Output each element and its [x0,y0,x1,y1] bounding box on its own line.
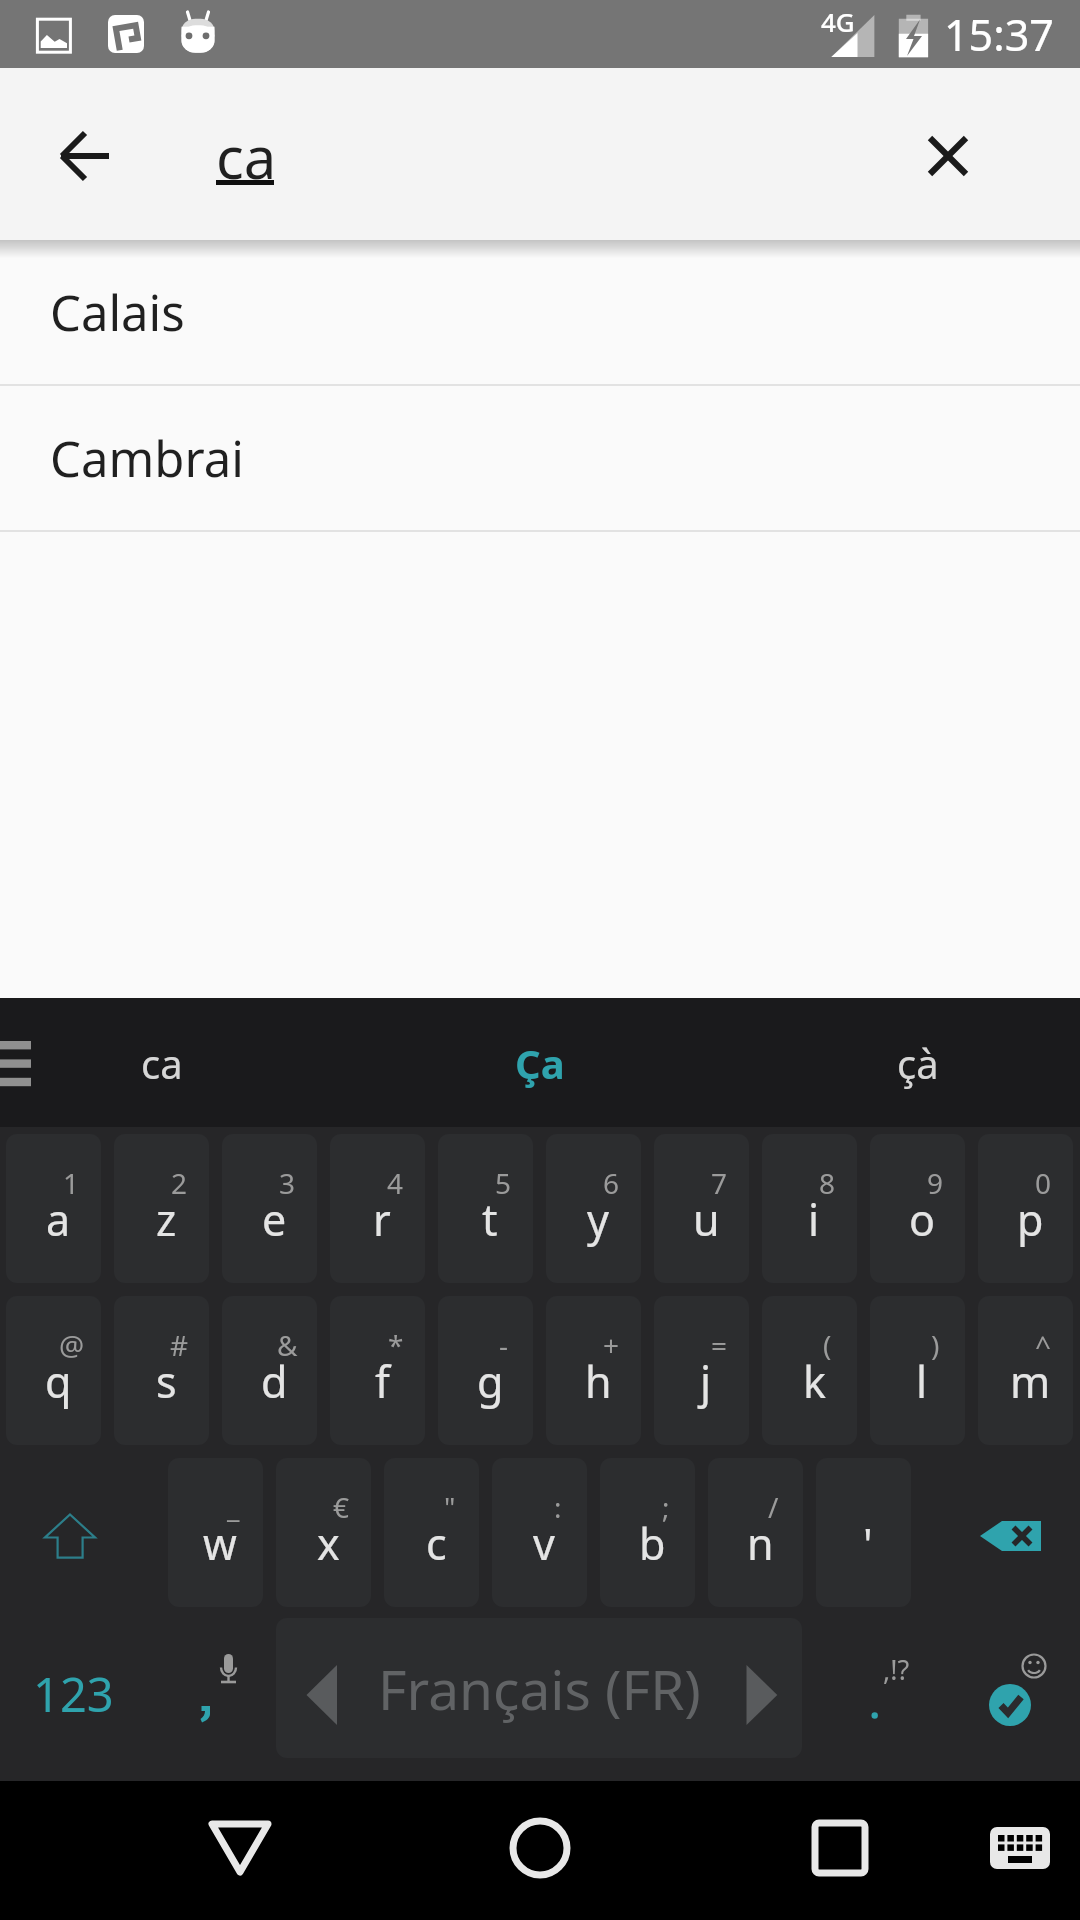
button[interactable]: Hide keyboard [180,1781,300,1920]
staticText: i [808,1190,820,1249]
button[interactable]: 4 [330,1134,425,1283]
staticText: ,!? [883,1651,910,1688]
staticText: r [373,1190,391,1249]
staticText: u [693,1190,720,1249]
button[interactable]: _ [168,1458,263,1607]
staticText: 9 [927,1164,944,1202]
button[interactable]: 123 [0,1614,160,1762]
button[interactable]: 7 [654,1134,749,1283]
staticText: € [333,1488,350,1526]
staticText: Cambrai [50,425,244,492]
staticText: h [585,1352,612,1411]
staticText: 4G [821,4,855,39]
staticText: f [375,1352,390,1411]
button[interactable]: ,!? [802,1614,920,1762]
staticText: 0 [1035,1164,1052,1202]
staticText: ( [823,1326,832,1364]
staticText: t [482,1190,498,1249]
staticText: ) [931,1326,940,1364]
staticText: k [803,1352,826,1411]
staticText: 15:37 [944,5,1054,64]
button[interactable]: 5 [438,1134,533,1283]
staticText: ; [662,1488,670,1526]
staticText: 8 [819,1164,836,1202]
staticText: " [444,1488,456,1526]
staticText: _ [227,1488,240,1526]
button[interactable]: Enter [920,1614,1080,1762]
button[interactable]: @ [6,1296,101,1445]
staticText: 7 [711,1164,728,1202]
staticText: w [203,1514,237,1573]
staticText: y [587,1190,609,1249]
button[interactable]: 1 [6,1134,101,1283]
button[interactable]: Ça [430,998,650,1127]
button[interactable]: Recent apps [780,1781,900,1920]
button[interactable]: Français (FR) [276,1618,802,1758]
button[interactable]: + [546,1296,641,1445]
staticText: ' [863,1514,873,1573]
staticText: z [156,1190,177,1249]
staticText: 123 [33,1662,114,1726]
button[interactable]: Backspace [918,1458,1080,1607]
button[interactable]: " [384,1458,479,1607]
staticText: n [747,1514,774,1573]
button[interactable]: ( [762,1296,857,1445]
button[interactable]: : [492,1458,587,1607]
staticText: a [46,1190,71,1249]
button[interactable]: * [330,1296,425,1445]
button[interactable]: Cambrai [0,386,1080,532]
staticText: b [639,1514,666,1573]
staticText: + [603,1326,620,1364]
button[interactable]: ca [52,998,272,1127]
button[interactable]: ) [870,1296,965,1445]
button[interactable]: 0 [978,1134,1073,1283]
staticText: g [477,1352,504,1411]
button[interactable]: Home [480,1781,600,1920]
staticText: 6 [603,1164,620,1202]
button[interactable]: Voice input [160,1614,276,1762]
staticText: p [1017,1190,1044,1249]
staticText: j [700,1352,712,1411]
button[interactable]: 6 [546,1134,641,1283]
staticText: o [909,1190,936,1249]
staticText: ^ [1035,1326,1052,1364]
staticText: 4 [387,1164,404,1202]
staticText: q [45,1352,72,1411]
button[interactable]: ^ [978,1296,1073,1445]
staticText: çà [897,1036,939,1090]
staticText: s [156,1352,177,1411]
staticText: 5 [495,1164,512,1202]
button[interactable]: 9 [870,1134,965,1283]
button[interactable]: çà [808,998,1028,1127]
button[interactable]: Shift [0,1458,168,1607]
staticText: l [916,1352,928,1411]
button[interactable]: 8 [762,1134,857,1283]
staticText: 2 [171,1164,188,1202]
staticText: m [1010,1352,1051,1411]
button[interactable]: Switch keyboard [960,1781,1080,1920]
button[interactable]: / [708,1458,803,1607]
button[interactable]: Clear search [908,116,988,196]
button[interactable]: # [114,1296,209,1445]
button[interactable]: & [222,1296,317,1445]
staticText: - [499,1326,509,1364]
staticText: * [388,1326,404,1364]
staticText: x [317,1514,340,1573]
button[interactable]: ; [600,1458,695,1607]
button[interactable]: € [276,1458,371,1607]
staticText: # [170,1326,189,1364]
button[interactable]: 2 [114,1134,209,1283]
staticText: Français (FR) [378,1651,701,1726]
button[interactable]: Back [36,108,132,204]
button[interactable]: = [654,1296,749,1445]
staticText: : [554,1488,562,1526]
staticText: = [711,1326,728,1364]
staticText: Calais [50,279,185,346]
staticText: / [768,1488,779,1526]
button[interactable]: - [438,1296,533,1445]
button[interactable]: 3 [222,1134,317,1283]
staticText: Ça [515,1036,565,1090]
button[interactable]: Calais [0,240,1080,386]
staticText: 3 [279,1164,296,1202]
button[interactable]: ' [816,1458,911,1607]
